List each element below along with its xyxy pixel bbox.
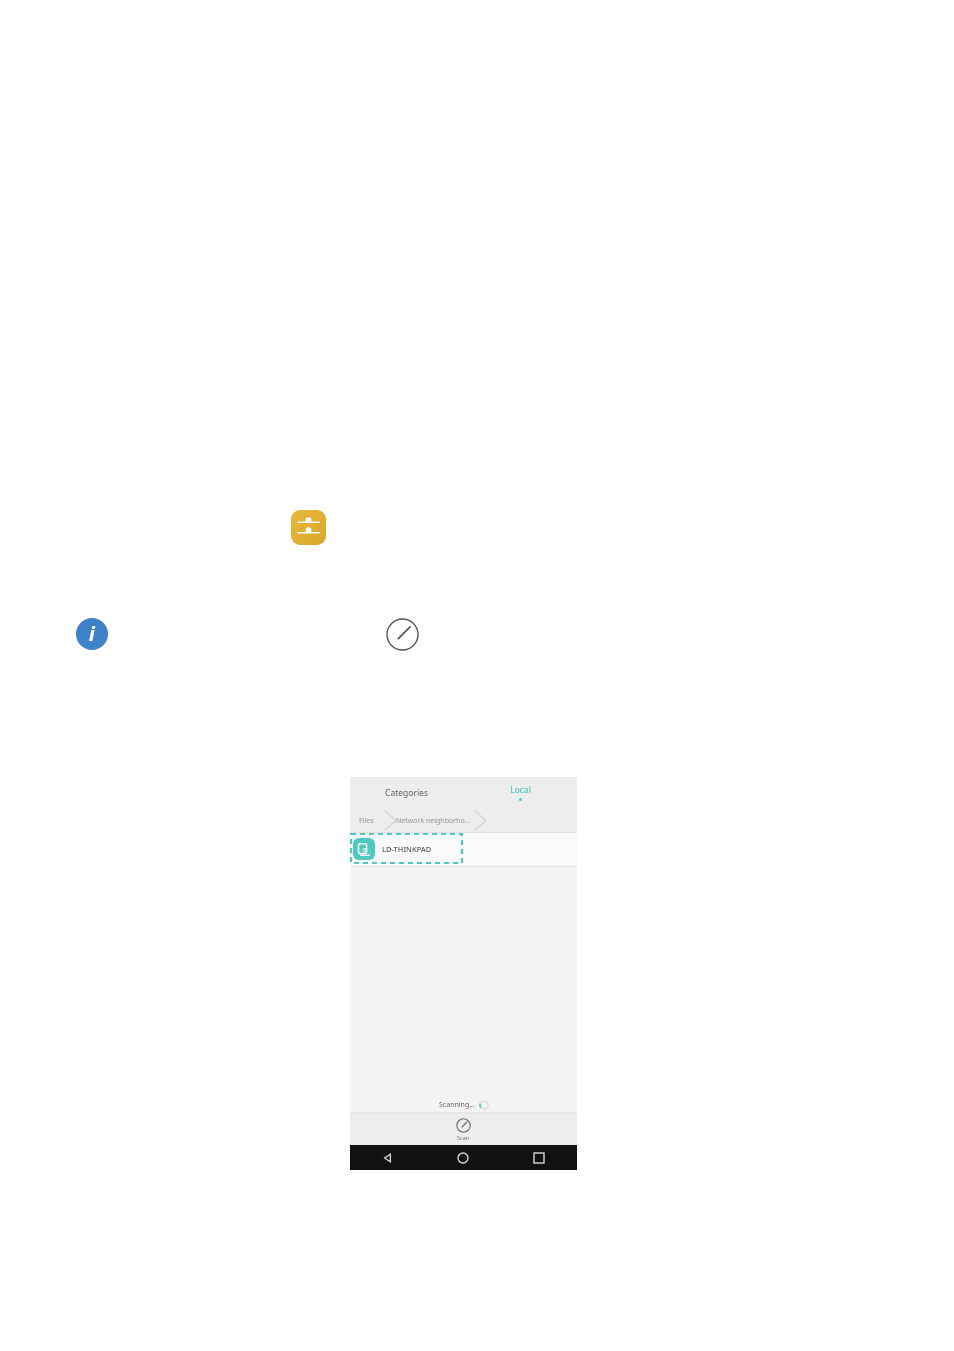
staticText: Categories [385, 787, 428, 799]
staticText: i [89, 621, 95, 647]
staticText: LD-THINKPAD [382, 844, 432, 854]
button[interactable]: Local [463, 777, 577, 808]
staticText: Scan [457, 1134, 470, 1141]
button[interactable]: Back [350, 1145, 425, 1170]
button[interactable]: Recent apps [501, 1145, 577, 1170]
staticText: Local [510, 784, 531, 796]
other: Information [76, 618, 108, 650]
staticText: Scanning... [439, 1100, 475, 1110]
staticText: Files [359, 816, 374, 826]
button[interactable]: LD-THINKPAD [353, 833, 463, 864]
button[interactable]: Scan [350, 1113, 577, 1145]
button[interactable]: Categories [350, 777, 463, 808]
button[interactable]: Files [359, 816, 374, 826]
button[interactable]: Home [425, 1145, 501, 1170]
other: App icon [291, 510, 326, 545]
button[interactable]: Network neighborho... [396, 816, 471, 826]
staticText: Network neighborho... [396, 816, 471, 826]
